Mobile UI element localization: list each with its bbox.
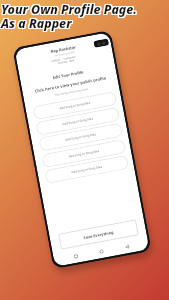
staticText: Country, Type (57, 58, 75, 64)
staticText: Add Song or Song Idea (71, 165, 103, 174)
staticText: Add Song or Song Idea (68, 149, 100, 159)
staticText: As a Rapper (0, 16, 71, 33)
button[interactable]: Add Song or Song Idea (44, 155, 129, 184)
button[interactable]: Edit Your Profile (52, 69, 84, 80)
staticText: Add Song or Song Idea (62, 116, 94, 126)
button[interactable]: Add Song or Song Idea (38, 122, 123, 152)
staticText: Your Own Profile Page. (1, 2, 137, 19)
staticText: As a Rapper (1, 15, 72, 32)
staticText: Your Own Profile Page. (0, 2, 136, 19)
staticText: Your Songs and song ideas (54, 87, 88, 97)
staticText: Your Own Profile Page. (2, 0, 138, 17)
button[interactable]: Home (96, 247, 106, 256)
staticText: As a Rapper (2, 14, 73, 31)
staticText: As a Rapper (0, 15, 71, 32)
staticText: contact instagram · (51, 54, 79, 62)
staticText: Rap Rockstar (50, 44, 76, 54)
staticText: Your Own Profile Page. (0, 0, 136, 17)
staticText: Your Own Profile Page. (2, 1, 138, 18)
button[interactable]: Save Everything (58, 219, 139, 250)
staticText: Your Own Profile Page. (2, 2, 138, 19)
button[interactable]: Add Song or Song Idea (41, 139, 126, 168)
staticText: As a Rapper (1, 16, 72, 33)
button[interactable]: Recents (71, 251, 80, 261)
staticText: Your Own Profile Page. (0, 1, 136, 18)
staticText: As a Rapper (1, 14, 72, 31)
staticText: As a Rapper (0, 14, 71, 31)
button[interactable]: Back (122, 242, 131, 251)
staticText: Your Own Profile Page. (1, 0, 137, 17)
staticText: Your Own Profile Page. (1, 1, 137, 18)
staticText: As a Rapper (2, 16, 73, 33)
staticText: Add Song or Song Idea (65, 132, 97, 142)
button[interactable]: Click here to view your public profile (34, 75, 107, 94)
staticText: Add Song or Song Idea (59, 101, 91, 110)
button[interactable]: Add Song or Song Idea (35, 107, 120, 136)
staticText: As a Rapper (2, 15, 73, 32)
staticText: Save Everything (83, 230, 114, 240)
button[interactable]: Add Song or Song Idea (32, 91, 117, 120)
staticText: your rapper name here (54, 51, 75, 57)
